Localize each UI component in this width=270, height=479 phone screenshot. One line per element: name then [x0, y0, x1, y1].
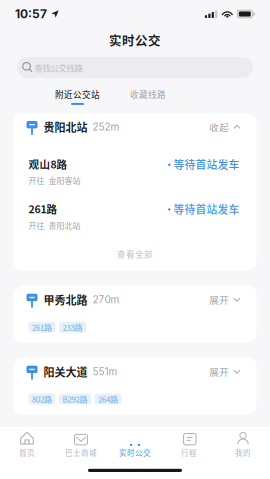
- staticText: 等待首站发车: [173, 156, 239, 172]
- staticText: 查看全部: [117, 247, 153, 260]
- staticText: 附近公交站: [55, 88, 100, 100]
- staticText: 行程: [181, 447, 197, 458]
- staticText: 264路: [98, 393, 118, 405]
- button[interactable]: 巴士商城: [54, 426, 108, 458]
- staticText: 展开: [209, 365, 229, 379]
- button[interactable]: 收起: [209, 120, 240, 134]
- staticText: 261路: [28, 201, 57, 216]
- staticText: 我的: [235, 447, 251, 458]
- staticText: 10:57: [15, 7, 47, 21]
- button[interactable]: 实时公交: [108, 426, 162, 458]
- button[interactable]: 展开: [209, 365, 240, 379]
- button[interactable]: 查看全部: [13, 238, 256, 271]
- staticText: 展开: [209, 293, 229, 307]
- button[interactable]: 收藏线路: [130, 88, 166, 105]
- staticText: B292路: [62, 393, 87, 405]
- staticText: 贵阳北站: [43, 119, 87, 135]
- staticText: 270m: [92, 294, 119, 306]
- button[interactable]: 首页: [0, 426, 54, 458]
- staticText: 巴士商城: [65, 447, 97, 458]
- staticText: 金阳客站: [48, 175, 80, 186]
- staticText: 收起: [209, 120, 229, 134]
- staticText: 551m: [92, 366, 117, 378]
- button[interactable]: 261路: [13, 194, 256, 238]
- staticText: 收藏线路: [130, 88, 166, 100]
- staticText: 等待首站发车: [173, 201, 239, 217]
- staticText: 261路: [32, 321, 52, 333]
- staticText: 252m: [92, 121, 119, 133]
- staticText: 802路: [32, 393, 52, 405]
- staticText: 开往: [28, 219, 44, 231]
- staticText: 查找公交线路: [34, 61, 82, 74]
- button[interactable]: 行程: [162, 426, 216, 458]
- button[interactable]: 我的: [216, 426, 270, 458]
- button[interactable]: 展开: [209, 293, 240, 307]
- staticText: 开往: [28, 175, 44, 186]
- staticText: 首页: [19, 447, 35, 458]
- button[interactable]: 观山8路: [13, 149, 256, 194]
- button[interactable]: 附近公交站: [55, 88, 100, 105]
- staticText: 阳关大道: [43, 364, 87, 380]
- staticText: 甲秀北路: [43, 292, 87, 308]
- button[interactable]: 查找公交线路: [17, 57, 253, 78]
- staticText: 贵阳北站: [48, 219, 80, 231]
- staticText: 实时公交: [109, 31, 161, 49]
- staticText: 观山8路: [28, 156, 67, 172]
- staticText: 233路: [62, 321, 82, 333]
- staticText: 实时公交: [119, 447, 151, 458]
